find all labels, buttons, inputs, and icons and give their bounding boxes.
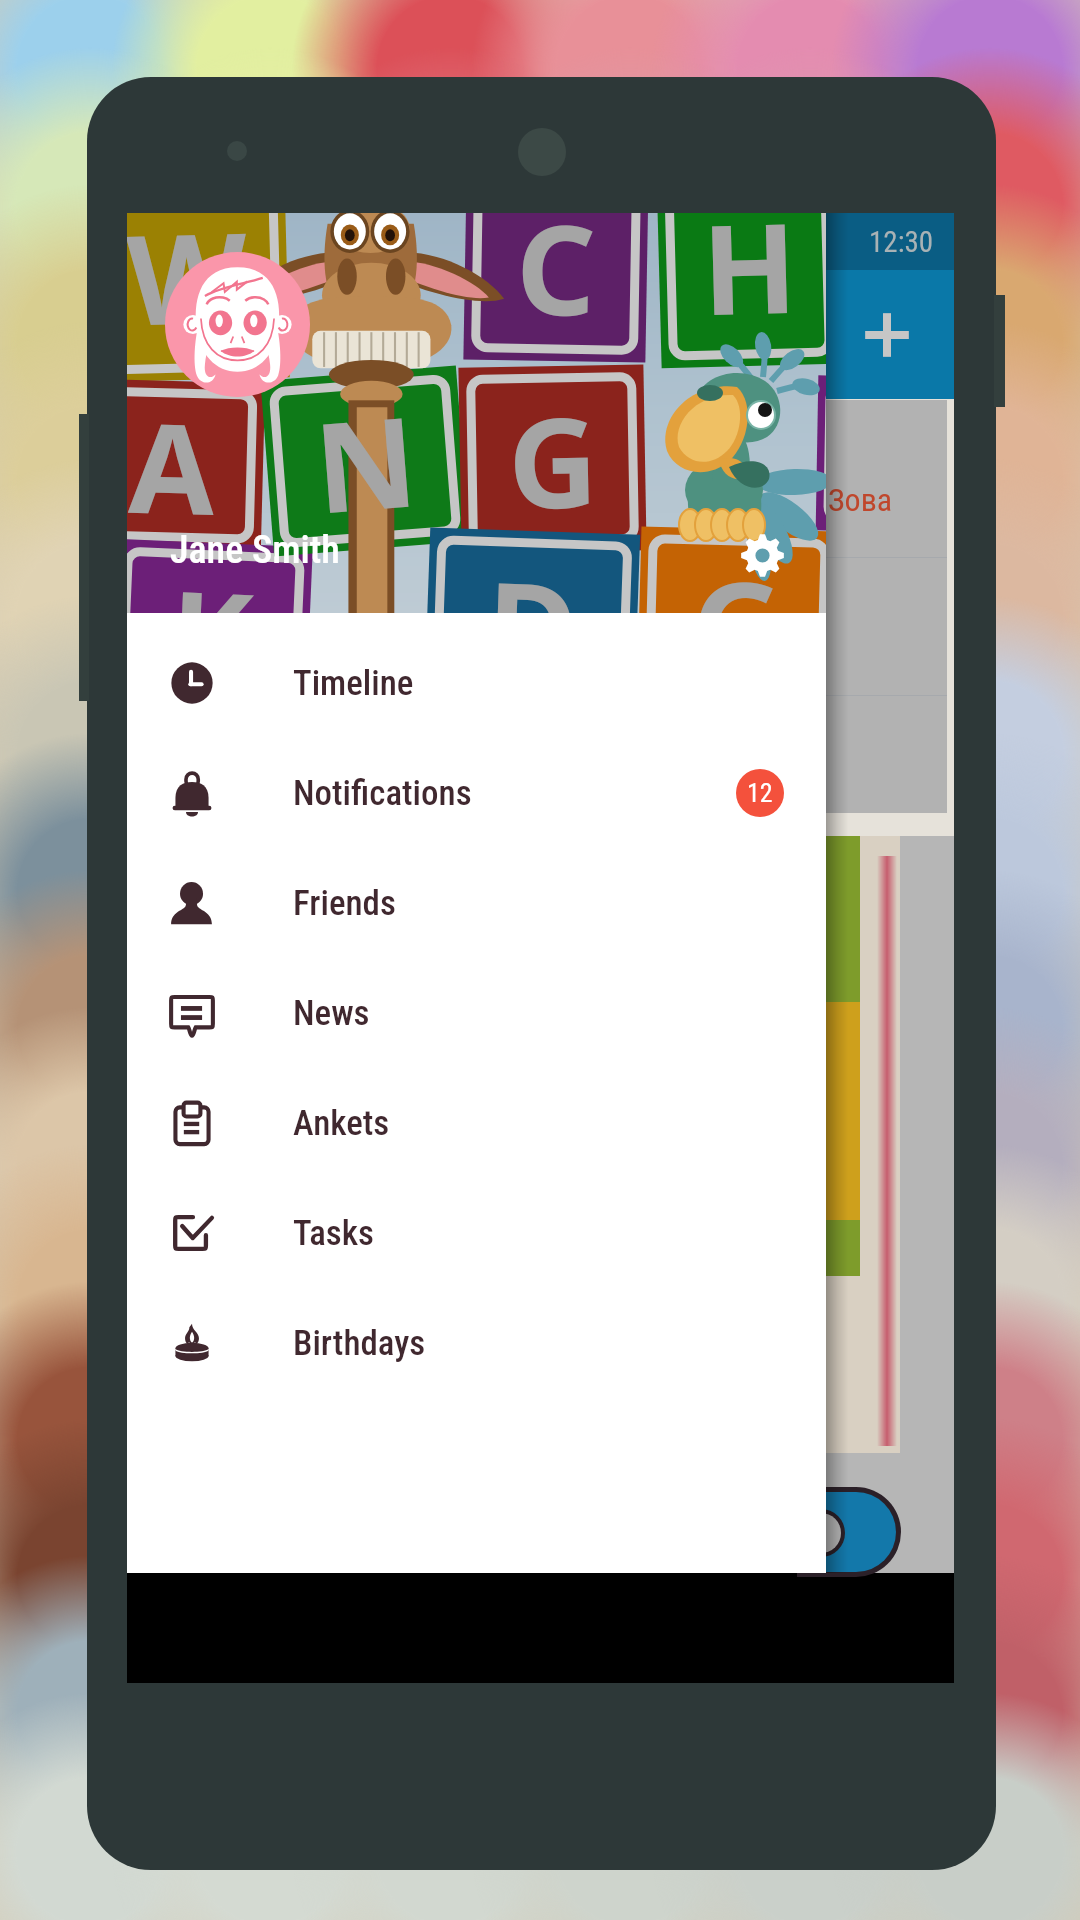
staticText: K [166,547,257,613]
staticText: 12:30 [869,225,934,259]
staticText: Tasks [293,1213,374,1254]
button[interactable]: News [127,958,826,1068]
button[interactable]: Tasks [127,1178,826,1288]
staticText: A [127,380,217,550]
button[interactable]: Settings [730,523,794,587]
button[interactable]: Friends [127,848,826,958]
staticText: Зова [828,481,893,519]
staticText: N [309,373,422,550]
staticText: H [700,213,799,351]
staticText: D [484,538,581,613]
staticText: Notifications [293,773,472,814]
button[interactable]: Birthdays [127,1288,826,1398]
button[interactable]: Timeline [127,628,826,738]
staticText: Timeline [293,663,414,704]
staticText: Birthdays [293,1323,426,1364]
staticText: Friends [293,883,396,924]
button[interactable]: Ankets [127,1068,826,1178]
staticText: Jane Smith [170,528,340,573]
staticText: W [127,213,249,361]
staticText: G [506,374,599,545]
staticText: C [514,213,597,352]
staticText: 12 [747,778,773,808]
staticText: G [690,538,784,613]
button[interactable]: Notifications [127,738,826,848]
staticText: News [293,993,370,1034]
staticText: Ankets [293,1103,390,1144]
